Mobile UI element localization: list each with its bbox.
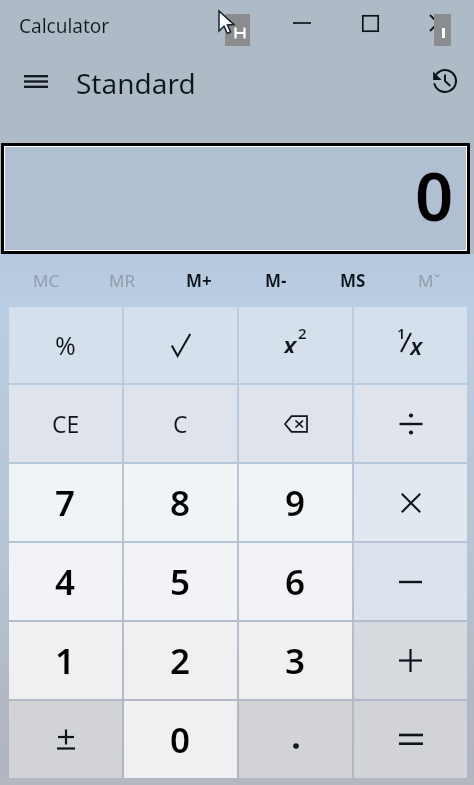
button[interactable]: 6 [239,543,352,620]
staticText: 6 [285,558,306,606]
staticText: 8 [170,479,191,527]
button[interactable]: 2 [124,622,237,699]
button[interactable]: 8 [124,464,237,541]
button[interactable]: 5 [124,543,237,620]
staticText: M+ [186,269,212,292]
staticText: Calculator [19,13,110,39]
button[interactable]: 1 [9,622,122,699]
staticText: MC [33,269,60,292]
button[interactable]: Minimize [272,0,332,46]
staticText: MR [109,269,135,292]
staticText: 9 [285,479,306,527]
button[interactable]: x [239,307,352,383]
staticText: CE [52,408,80,439]
button[interactable]: MS [314,256,391,304]
button[interactable] [354,464,467,541]
button[interactable]: Mˇ [391,256,468,304]
button[interactable]: 3 [239,622,352,699]
button[interactable]: Maximize [340,0,400,46]
staticText: 5 [170,558,191,606]
staticText: 0 [415,149,454,240]
staticText: 7 [55,479,76,527]
button[interactable]: MR [84,256,160,304]
staticText: 0 [170,716,191,764]
button[interactable]: Close [408,0,468,46]
button[interactable]: % [9,307,122,383]
staticText: % [55,328,76,362]
staticText: Standard [76,64,196,102]
staticText: 1 [55,637,76,685]
button[interactable]: CE [9,385,122,462]
staticText: M- [265,269,287,292]
button[interactable]: 9 [239,464,352,541]
button[interactable] [239,385,352,462]
button[interactable] [354,622,467,699]
button[interactable]: C [124,385,237,462]
staticText: Mˇ [418,269,441,292]
button[interactable]: MC [8,256,84,304]
staticText: 3 [285,637,306,685]
button[interactable]: 4 [9,543,122,620]
button[interactable] [354,385,467,462]
button[interactable]: 0 [124,701,237,778]
staticText: x [283,327,297,353]
staticText: 1 [397,323,406,343]
button[interactable] [354,543,467,620]
staticText: 2 [298,323,307,343]
button[interactable] [239,701,352,778]
button[interactable]: 7 [9,464,122,541]
button[interactable]: M- [237,256,314,304]
button[interactable]: History [422,57,468,105]
staticText: 4 [55,558,76,606]
button[interactable] [354,701,467,778]
staticText: x [410,329,423,357]
button[interactable] [9,701,122,778]
button[interactable]: M+ [160,256,237,304]
button[interactable]: Menu [12,58,60,104]
staticText: 2 [170,637,191,685]
staticText: C [173,408,188,439]
staticText: MS [340,269,366,292]
button[interactable] [124,307,237,383]
button[interactable]: 1 [354,307,467,383]
